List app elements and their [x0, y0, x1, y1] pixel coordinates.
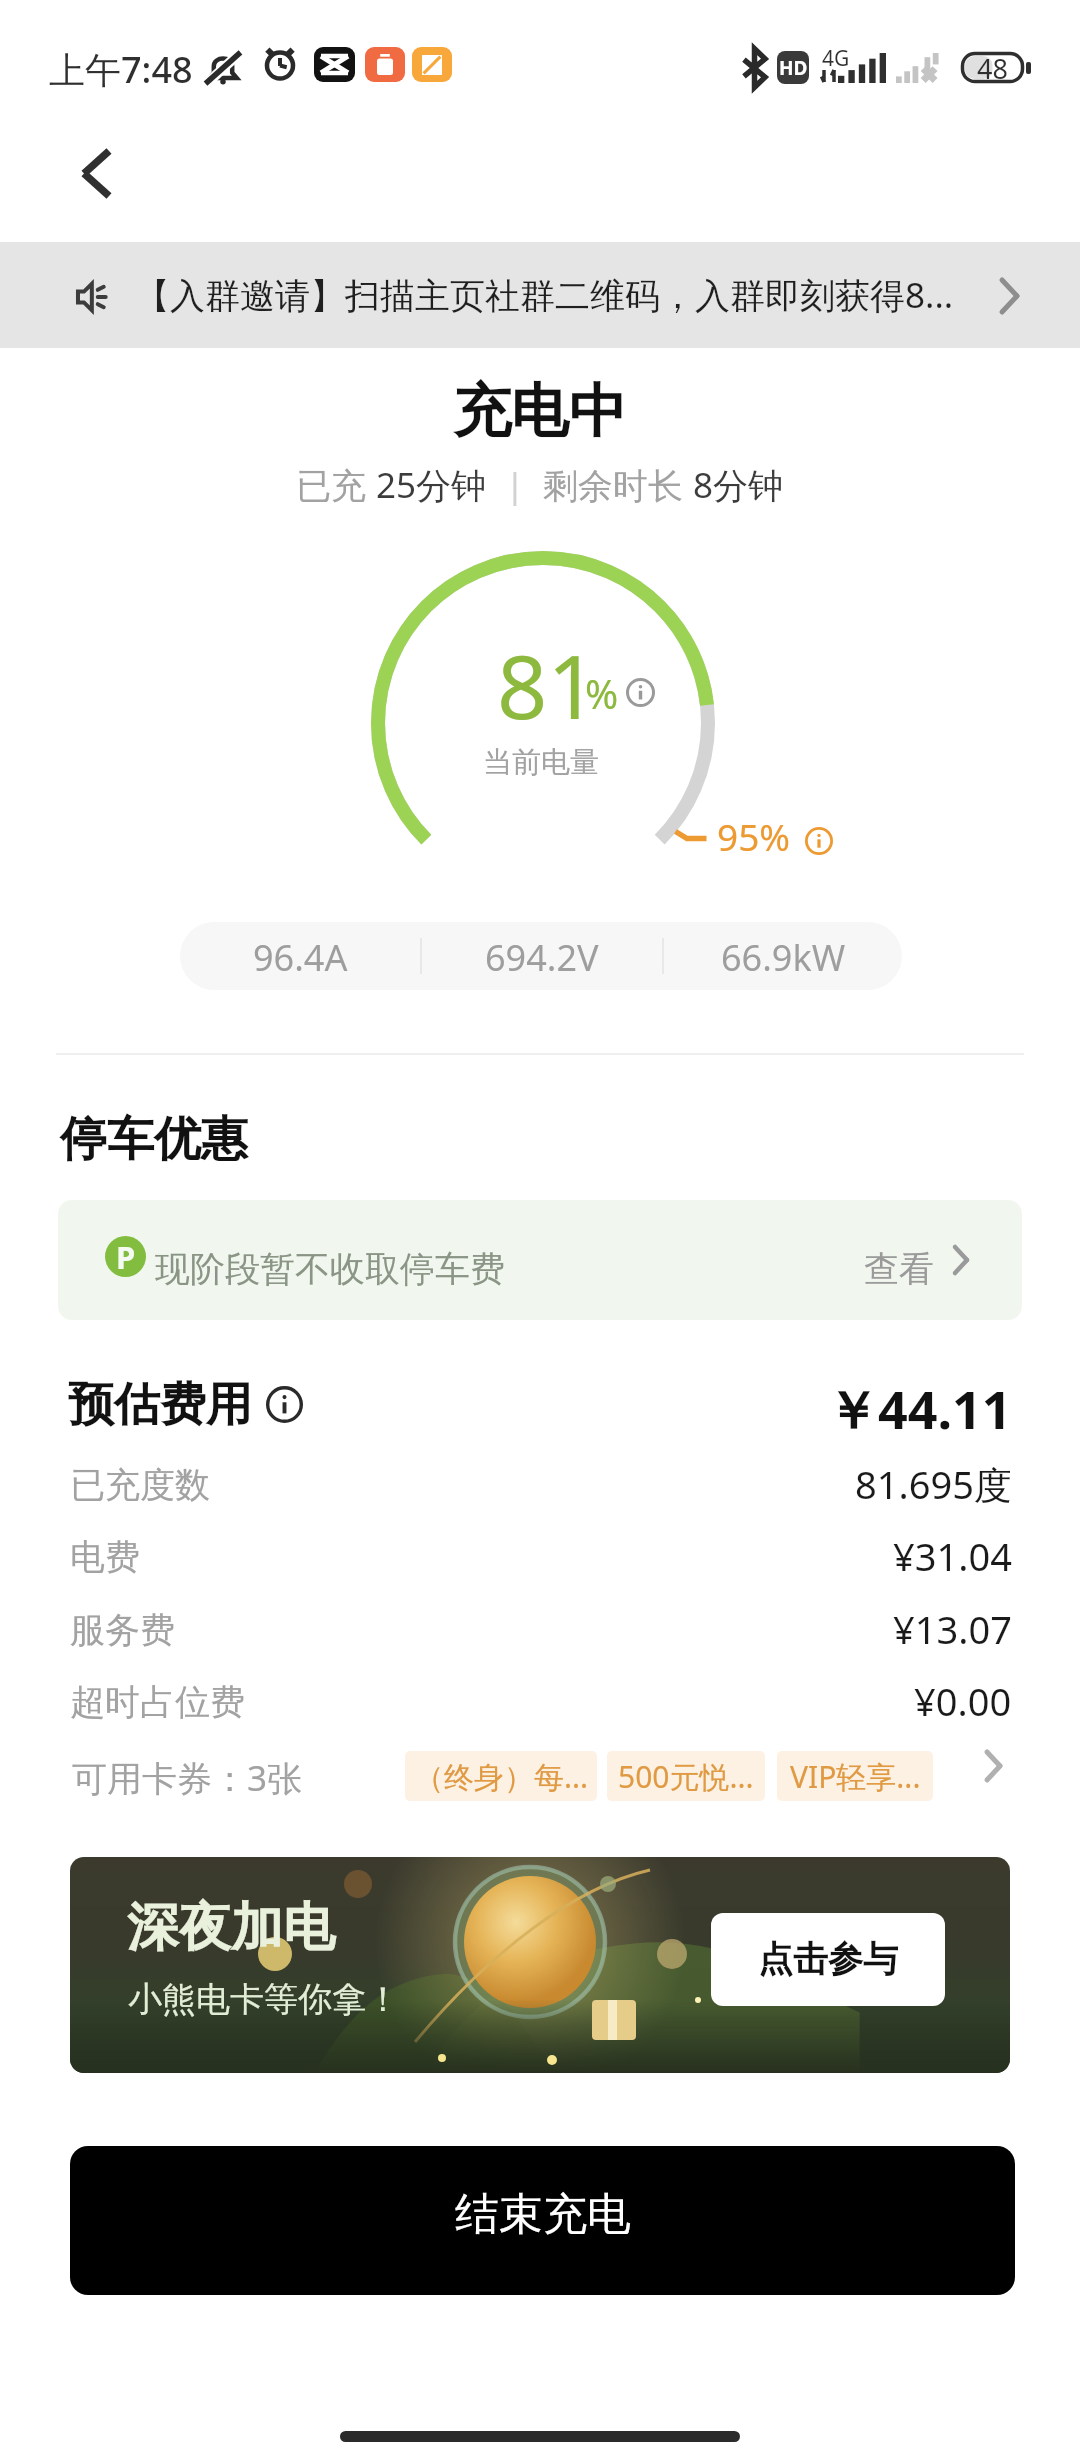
staticText: 已充 — [296, 461, 376, 509]
staticText: 当前电量 — [483, 744, 599, 781]
staticText: 深夜加电 — [127, 1895, 335, 1961]
staticText: VIP轻享... — [790, 1756, 921, 1797]
staticText: ￥44.11 — [826, 1373, 1012, 1444]
staticText: ¥31.04 — [893, 1530, 1012, 1582]
staticText: 小熊电卡等你拿！ — [128, 1978, 400, 2021]
staticText: 694.2V — [485, 933, 599, 982]
staticText: 48 — [977, 50, 1008, 81]
staticText: 点击参与 — [758, 1937, 898, 1981]
staticText: 可用卡券：3张 — [72, 1754, 303, 1802]
staticText: 25分钟 — [376, 461, 487, 509]
staticText: 剩余时长 — [543, 461, 693, 509]
button[interactable]: 结束充电 — [70, 2146, 1015, 2295]
staticText: 上午7:48 — [49, 45, 193, 94]
staticText: 现阶段暂不收取停车费 — [155, 1247, 505, 1291]
staticText: 服务费 — [70, 1608, 175, 1652]
staticText: 已充度数 — [70, 1463, 210, 1507]
staticText: ¥13.07 — [893, 1603, 1012, 1655]
staticText: 4G — [822, 44, 850, 73]
staticText: 电费 — [70, 1535, 140, 1579]
staticText: 结束充电 — [455, 2187, 631, 2242]
button[interactable]: 【入群邀请】扫描主页社群二维码，入群即刻获得8... — [0, 242, 1080, 348]
button[interactable]: Target charge info — [805, 827, 833, 855]
staticText: 超时占位费 — [70, 1680, 245, 1724]
staticText: （终身）每... — [414, 1756, 589, 1797]
staticText: 【入群邀请】扫描主页社群二维码，入群即刻获得8... — [135, 271, 954, 319]
staticText: 预估费用 — [68, 1376, 252, 1434]
button[interactable]: P — [58, 1200, 1022, 1320]
staticText: % — [585, 666, 619, 720]
staticText: 81 — [497, 625, 598, 745]
button[interactable]: 点击参与 — [711, 1913, 945, 2006]
staticText: 停车优惠 — [60, 1110, 248, 1169]
staticText: ¥0.00 — [914, 1675, 1012, 1727]
staticText: 查看 — [864, 1247, 934, 1291]
staticText: P — [116, 1236, 136, 1277]
button[interactable]: Battery level info — [626, 678, 655, 707]
staticText: | — [487, 461, 543, 509]
staticText: 96.4A — [253, 933, 348, 982]
staticText: 66.9kW — [721, 933, 846, 982]
staticText: 81.695度 — [855, 1458, 1012, 1510]
staticText: 8分钟 — [693, 461, 784, 509]
staticText: 充电中 — [453, 375, 627, 448]
staticText: 95% — [717, 811, 791, 861]
button[interactable]: Estimated cost info — [266, 1386, 303, 1423]
button[interactable]: Back — [46, 123, 146, 223]
button[interactable]: 可用卡券：3张 — [66, 1740, 1014, 1812]
staticText: HD — [779, 55, 808, 81]
button[interactable]: 深夜加电 — [70, 1857, 1010, 2073]
staticText: 500元悦... — [618, 1756, 754, 1797]
